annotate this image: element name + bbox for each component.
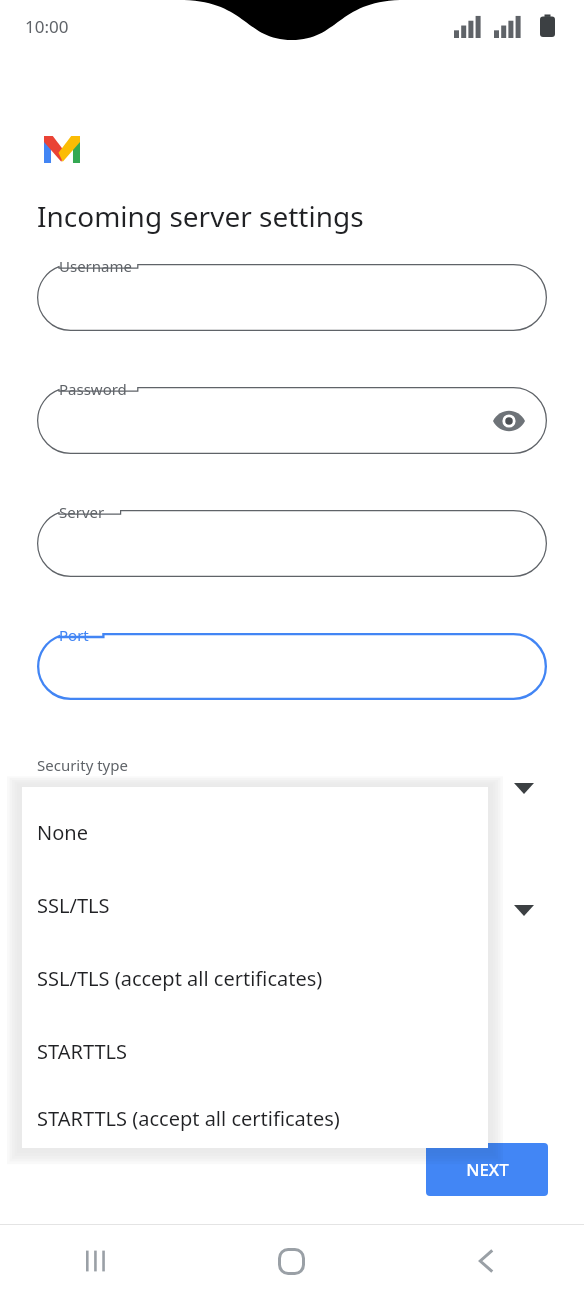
- staticText: STARTTLS (accept all certificates): [37, 1105, 340, 1132]
- staticText: 10:00: [25, 15, 69, 38]
- button[interactable]: Home: [194, 1225, 389, 1297]
- button[interactable]: Username: [37, 264, 547, 331]
- staticText: SSL/TLS (accept all certificates): [37, 965, 323, 992]
- button[interactable]: Security type: [37, 755, 547, 821]
- staticText: Password: [59, 379, 127, 399]
- button[interactable]: STARTTLS (accept all certificates): [22, 1088, 488, 1148]
- staticText: Server: [59, 502, 105, 522]
- button[interactable]: SSL/TLS (accept all certificates): [22, 942, 488, 1015]
- button[interactable]: Back: [389, 1225, 584, 1297]
- button[interactable]: NEXT: [426, 1143, 548, 1196]
- staticText: Username: [59, 256, 132, 276]
- staticText: Port: [59, 625, 89, 645]
- button[interactable]: None: [22, 796, 488, 869]
- button[interactable]: Show password: [491, 403, 527, 439]
- button[interactable]: Server: [37, 510, 547, 577]
- staticText: Incoming server settings: [37, 197, 364, 235]
- button[interactable]: Port: [37, 633, 547, 700]
- staticText: None: [37, 819, 88, 846]
- staticText: Security type: [37, 755, 128, 775]
- staticText: NEXT: [466, 1158, 509, 1181]
- button[interactable]: SSL/TLS: [22, 869, 488, 942]
- button[interactable]: Delete email from server: [37, 877, 547, 943]
- button[interactable]: Recents: [0, 1225, 194, 1297]
- staticText: SSL/TLS: [37, 892, 110, 919]
- button[interactable]: STARTTLS: [22, 1015, 488, 1088]
- staticText: STARTTLS: [37, 1038, 128, 1065]
- button[interactable]: Password: [37, 387, 547, 454]
